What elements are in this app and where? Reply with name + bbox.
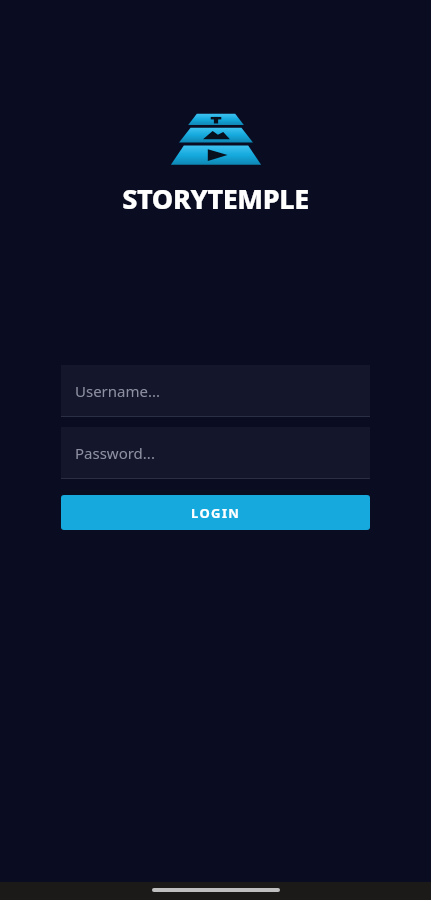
button[interactable]: LOGIN [61, 495, 370, 530]
button[interactable]: Username... [61, 365, 370, 417]
staticText: LOGIN [191, 504, 241, 522]
button[interactable]: Password... [61, 427, 370, 479]
staticText: STORYTEMPLE [122, 180, 309, 217]
other: StoryTemple logo [168, 112, 264, 174]
staticText: Username... [75, 381, 161, 401]
staticText: Password... [75, 443, 155, 463]
